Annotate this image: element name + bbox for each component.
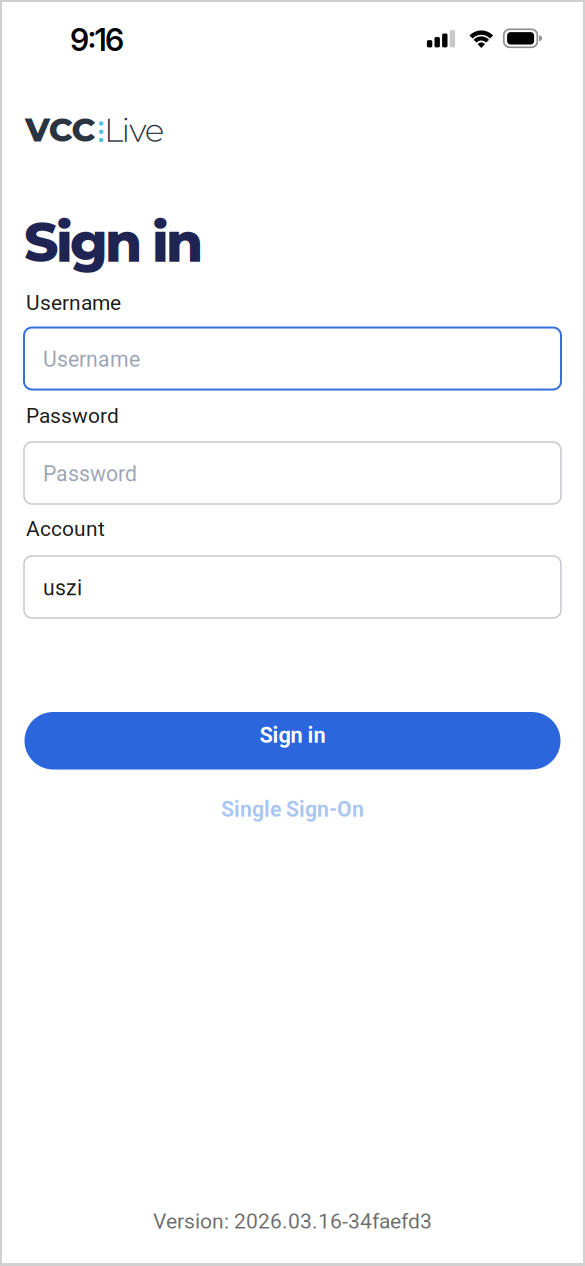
staticText: Single Sign-On bbox=[221, 797, 364, 822]
staticText: Live bbox=[104, 110, 165, 150]
staticText: 9:16 bbox=[70, 21, 124, 58]
staticText: Password bbox=[26, 403, 119, 428]
staticText: Username bbox=[43, 347, 140, 372]
staticText: Password bbox=[43, 462, 137, 486]
staticText: uszi bbox=[43, 576, 82, 600]
staticText: Sign in bbox=[259, 722, 325, 748]
staticText: Version: 2026.03.16-34faefd3 bbox=[153, 1209, 432, 1234]
staticText: Sign in bbox=[24, 210, 203, 275]
staticText: Username bbox=[26, 290, 121, 315]
staticText: Account bbox=[26, 516, 105, 541]
staticText: VCC bbox=[25, 110, 95, 150]
